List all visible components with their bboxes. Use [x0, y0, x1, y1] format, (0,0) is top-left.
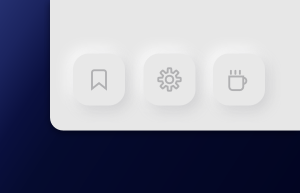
button[interactable]: Coffee [204, 44, 274, 114]
button[interactable]: Settings [134, 44, 204, 114]
button[interactable]: Bookmark [64, 44, 134, 114]
